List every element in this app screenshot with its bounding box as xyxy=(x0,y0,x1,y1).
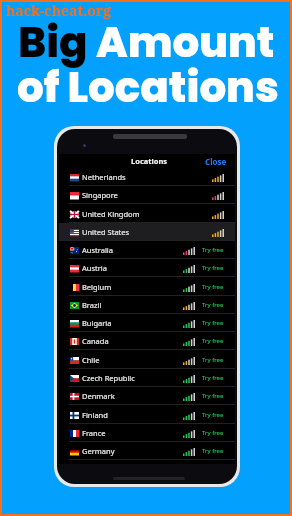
button[interactable]: Close xyxy=(205,154,235,168)
staticText: Close xyxy=(205,156,227,166)
staticText: Try free xyxy=(202,374,224,382)
staticText: of Locations xyxy=(17,58,279,117)
button[interactable]: Finland xyxy=(59,406,235,424)
staticText: Locations xyxy=(131,156,168,166)
staticText: Australia xyxy=(82,245,113,255)
staticText: Brazil xyxy=(82,300,102,310)
staticText: Denmark xyxy=(82,391,115,401)
button[interactable]: Chile xyxy=(59,351,235,369)
button[interactable]: Belgium xyxy=(59,278,235,296)
button[interactable]: Australia xyxy=(59,241,235,259)
button[interactable]: United Kingdom xyxy=(59,205,235,223)
staticText: Try free xyxy=(202,447,224,455)
button[interactable]: France xyxy=(59,424,235,442)
staticText: Try free xyxy=(202,319,224,327)
button[interactable]: Bulgaria xyxy=(59,314,235,332)
staticText: Canada xyxy=(82,336,109,346)
staticText: Singapore xyxy=(82,190,118,200)
staticText: hack-cheat.org xyxy=(6,1,112,20)
staticText: Belgium xyxy=(82,282,112,292)
button[interactable]: Austria xyxy=(59,259,235,277)
button[interactable]: Brazil xyxy=(59,296,235,314)
staticText: Try free xyxy=(202,411,224,419)
staticText: Try free xyxy=(202,301,224,309)
staticText: Amount xyxy=(96,13,275,72)
button[interactable]: United States xyxy=(59,223,235,241)
staticText: Czech Republic xyxy=(82,373,135,383)
staticText: Chile xyxy=(82,355,100,365)
staticText: Netherlands xyxy=(82,172,126,182)
staticText: United Kingdom xyxy=(82,209,140,219)
staticText: Big xyxy=(18,13,96,72)
staticText: Try free xyxy=(202,356,224,364)
button[interactable]: Czech Republic xyxy=(59,369,235,387)
staticText: Austria xyxy=(82,263,107,273)
staticText: United States xyxy=(82,227,130,237)
button[interactable]: Netherlands xyxy=(59,168,235,186)
staticText: Try free xyxy=(202,392,224,400)
button[interactable]: Singapore xyxy=(59,186,235,204)
staticText: Germany xyxy=(82,446,115,456)
button[interactable]: Germany xyxy=(59,442,235,460)
staticText: Try free xyxy=(202,264,224,272)
staticText: Try free xyxy=(202,337,224,345)
button[interactable]: Denmark xyxy=(59,387,235,405)
staticText: France xyxy=(82,428,106,438)
button[interactable]: Canada xyxy=(59,332,235,350)
staticText: Try free xyxy=(202,429,224,437)
staticText: Finland xyxy=(82,410,108,420)
staticText: Try free xyxy=(202,246,224,254)
staticText: Try free xyxy=(202,283,224,291)
staticText: Bulgaria xyxy=(82,318,112,328)
